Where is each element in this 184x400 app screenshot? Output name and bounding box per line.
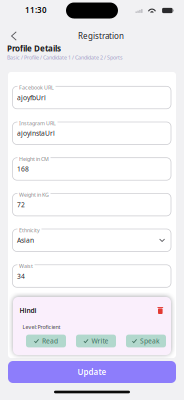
button[interactable]: Read [26,335,66,347]
staticText: Level: Proficient [22,323,60,331]
button[interactable]: Speak [126,335,166,347]
staticText: 11:30 [25,5,47,15]
staticText: Asian [17,236,34,245]
staticText: Read [42,337,58,345]
staticText: Write [92,337,109,345]
staticText: Waist [19,262,33,270]
staticText: Weight in KG [19,191,49,198]
staticText: Update [77,367,106,377]
staticText: ajoyinstaUrl [17,129,55,138]
button[interactable]: Write [76,335,116,347]
staticText: ajoyfbUrl [17,93,46,102]
staticText: Registration [78,31,124,41]
staticText: 34 [17,272,25,280]
staticText: Height in CM [19,155,49,162]
staticText: Basic / Profile / Candidate 1 / Candidat… [7,54,123,61]
button[interactable]: Delete language [157,307,163,314]
staticText: Hindi [19,306,36,315]
button[interactable]: Back [4,27,24,45]
staticText: Facebook URL [19,84,54,91]
staticText: 168 [17,164,29,173]
staticText: Speak [140,337,160,345]
staticText: Profile Details [7,43,61,54]
button[interactable]: Update [8,361,176,383]
staticText: 72 [17,200,25,209]
staticText: Ethnicity [19,227,40,234]
staticText: Instagram URL [19,120,56,127]
